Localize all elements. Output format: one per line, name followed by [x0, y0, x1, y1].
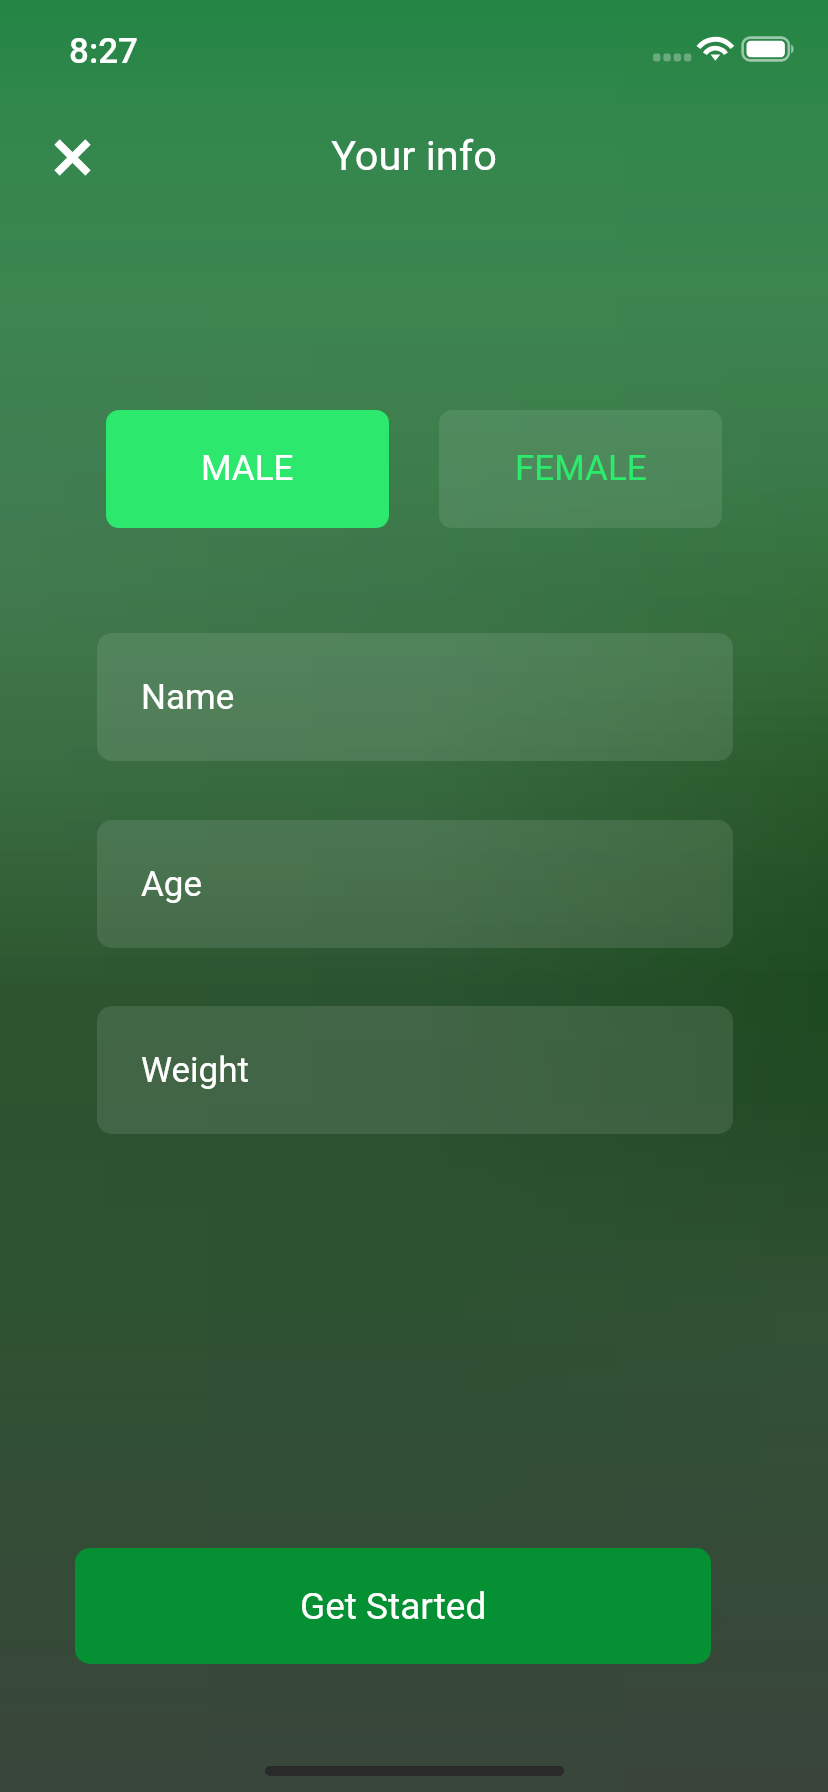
staticText: Weight — [141, 1050, 249, 1091]
staticText: Get Started — [300, 1585, 487, 1628]
staticText: MALE — [201, 448, 294, 489]
button[interactable]: Close — [40, 125, 104, 189]
staticText: FEMALE — [515, 448, 647, 489]
button[interactable]: Weight — [97, 1006, 733, 1134]
button[interactable]: Name — [97, 633, 733, 761]
staticText: Name — [141, 677, 235, 718]
button[interactable]: Get Started — [75, 1548, 711, 1664]
button[interactable]: Age — [97, 820, 733, 948]
staticText: Age — [141, 864, 203, 905]
staticText: Your info — [331, 131, 497, 180]
button[interactable]: FEMALE — [439, 410, 722, 528]
button[interactable]: MALE — [106, 410, 389, 528]
staticText: 8:27 — [69, 31, 138, 72]
